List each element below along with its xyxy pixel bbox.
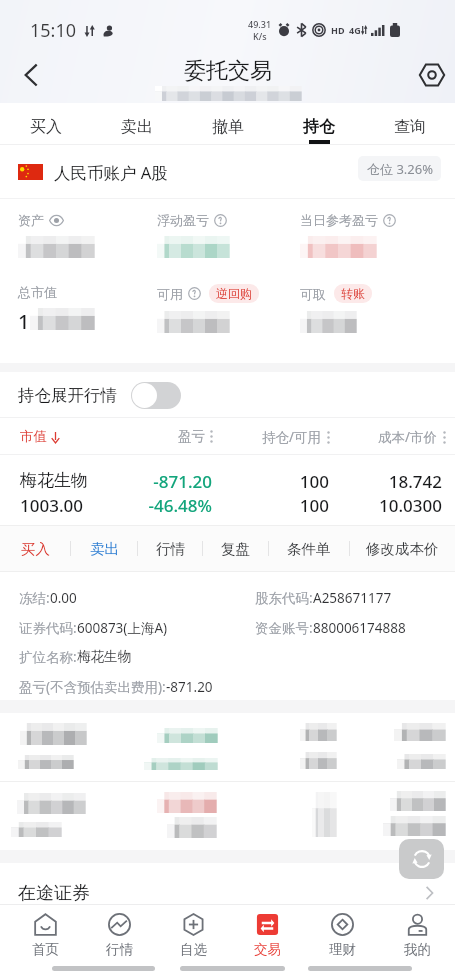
button[interactable]: Back — [8, 52, 54, 98]
staticText: 可用 — [157, 286, 183, 302]
button[interactable]: 理财 — [305, 905, 380, 974]
button[interactable]: 撤单 — [182, 103, 273, 145]
staticText: 证券代码: — [19, 619, 77, 637]
staticText: 梅花生物 — [77, 648, 131, 665]
staticText: 100 — [212, 470, 329, 493]
staticText: 10.0300 — [329, 494, 442, 517]
button[interactable]: Refresh — [399, 839, 444, 879]
staticText: HD — [331, 24, 345, 36]
staticText: 逆回购 — [216, 286, 252, 301]
staticText: 15:10 — [30, 18, 77, 43]
staticText: -871.20 — [166, 678, 213, 696]
staticText: 1 — [18, 308, 30, 335]
staticText: 人民币账户 A股 — [54, 161, 168, 184]
button[interactable]: 逆回购 — [209, 284, 259, 303]
staticText: 100 — [212, 494, 329, 517]
button[interactable]: 卖出 — [91, 103, 182, 145]
staticText: 盈亏(不含预估卖出费用): — [19, 678, 166, 696]
staticText: 复盘 — [221, 540, 250, 558]
staticText: 在途证券 — [18, 882, 90, 905]
button[interactable]: 首页 — [8, 905, 82, 974]
button[interactable]: 仓位 3.26% — [358, 156, 441, 181]
button[interactable]: 卖出 — [71, 525, 137, 572]
button[interactable]: 条件单 — [269, 525, 349, 572]
staticText: 盈亏 — [178, 428, 205, 445]
staticText: 自选 — [180, 941, 207, 958]
staticText: 资金账号: — [255, 619, 313, 637]
staticText: 1003.00 — [20, 494, 140, 517]
staticText: 当日参考盈亏 — [300, 212, 378, 228]
staticText: 卖出 — [90, 540, 119, 558]
staticText: 冻结: — [19, 589, 50, 607]
staticText: 49.31 — [248, 18, 272, 30]
staticText: 交易 — [254, 941, 281, 958]
staticText: 梅花生物 — [20, 470, 140, 491]
staticText: 股东代码: — [255, 589, 313, 607]
staticText: 委托交易 — [184, 57, 272, 85]
button[interactable]: 交易 — [230, 905, 305, 974]
staticText: A258671177 — [313, 589, 392, 607]
staticText: -46.48% — [140, 494, 212, 517]
staticText: 撤单 — [212, 117, 244, 137]
staticText: 880006174888 — [313, 619, 406, 637]
button[interactable]: 我的 — [380, 905, 455, 974]
staticText: 首页 — [32, 941, 59, 958]
staticText: 持仓 — [303, 117, 335, 137]
staticText: 持仓展开行情 — [18, 385, 117, 406]
staticText: 资产 — [18, 212, 44, 228]
button[interactable] — [0, 713, 455, 781]
staticText: 理财 — [329, 941, 356, 958]
button[interactable] — [0, 783, 455, 850]
button[interactable]: 持仓 — [273, 103, 364, 145]
button[interactable]: 复盘 — [203, 525, 268, 572]
staticText: 仓位 3.26% — [367, 160, 433, 178]
staticText: 买入 — [30, 117, 62, 137]
staticText: 条件单 — [287, 540, 331, 558]
staticText: 4G — [349, 24, 361, 36]
button[interactable]: 行情 — [138, 525, 202, 572]
button[interactable]: 买入 — [0, 525, 70, 572]
staticText: 市值 — [20, 428, 47, 445]
staticText: 持仓/可用 — [262, 428, 322, 446]
button[interactable]: Settings — [410, 53, 454, 97]
button[interactable]: 修改成本价 — [350, 525, 455, 572]
staticText: 成本/市价 — [378, 428, 438, 446]
staticText: 买入 — [21, 540, 50, 558]
staticText: K/s — [253, 30, 267, 42]
staticText: 总市值 — [18, 284, 57, 300]
button[interactable]: 转账 — [334, 284, 372, 303]
staticText: 可取 — [300, 286, 326, 302]
staticText: 扩位名称: — [19, 648, 77, 666]
staticText: 行情 — [106, 941, 133, 958]
button[interactable]: 梅花生物 — [0, 455, 455, 525]
staticText: 修改成本价 — [366, 540, 439, 558]
button[interactable]: 查询 — [364, 103, 455, 145]
button[interactable]: 买入 — [0, 103, 91, 145]
staticText: 18.742 — [329, 470, 442, 493]
staticText: 0.00 — [50, 589, 77, 607]
button[interactable]: 在途证券 — [0, 863, 455, 905]
button[interactable]: 持仓展开行情开关 — [131, 382, 181, 409]
staticText: 行情 — [156, 540, 185, 558]
staticText: 转账 — [341, 286, 365, 301]
staticText: 600873(上海A) — [77, 619, 168, 637]
staticText: -871.20 — [140, 470, 212, 493]
staticText: 我的 — [404, 941, 431, 958]
staticText: 查询 — [394, 117, 426, 137]
button[interactable]: 自选 — [156, 905, 230, 974]
button[interactable]: 行情 — [82, 905, 156, 974]
staticText: 浮动盈亏 — [157, 212, 209, 228]
staticText: 卖出 — [121, 117, 153, 137]
